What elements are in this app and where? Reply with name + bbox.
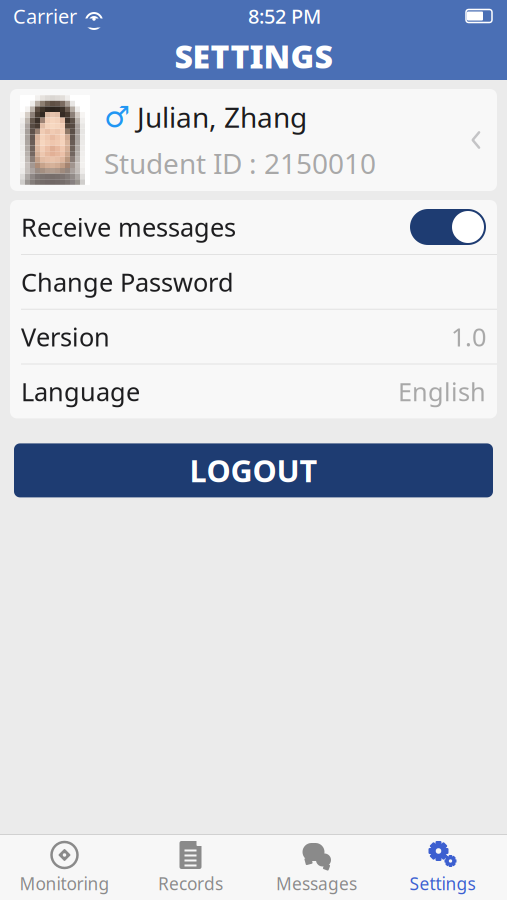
- staticText: 8:52 PM: [248, 3, 321, 29]
- button[interactable]: Monitoring: [1, 835, 127, 899]
- staticText: ♂: [104, 100, 130, 134]
- staticText: English: [398, 375, 486, 408]
- staticText: SETTINGS: [174, 35, 332, 77]
- staticText: Receive messages: [21, 210, 236, 244]
- staticText: Change Password: [21, 265, 234, 299]
- button[interactable]: Version: [10, 310, 497, 364]
- button[interactable]: LOGOUT: [14, 443, 493, 497]
- staticText: Student ID : 2150010: [104, 144, 376, 182]
- button[interactable]: Receive messages: [10, 200, 497, 255]
- staticText: Records: [158, 872, 223, 895]
- button[interactable]: Language: [10, 364, 497, 418]
- staticText: Language: [21, 375, 140, 408]
- staticText: LOGOUT: [189, 450, 317, 491]
- button[interactable]: Change Password: [10, 255, 497, 310]
- button[interactable]: Settings: [379, 835, 505, 899]
- staticText: Settings: [409, 872, 475, 895]
- staticText: 1.0: [451, 320, 486, 353]
- staticText: Julian, Zhang: [137, 98, 307, 135]
- button[interactable]: Messages: [253, 835, 379, 899]
- staticText: Carrier: [13, 3, 77, 29]
- button[interactable]: ♂: [10, 89, 497, 191]
- staticText: Monitoring: [19, 872, 109, 895]
- staticText: Version: [21, 320, 110, 353]
- staticText: Messages: [276, 872, 357, 895]
- button[interactable]: Records: [127, 835, 253, 899]
